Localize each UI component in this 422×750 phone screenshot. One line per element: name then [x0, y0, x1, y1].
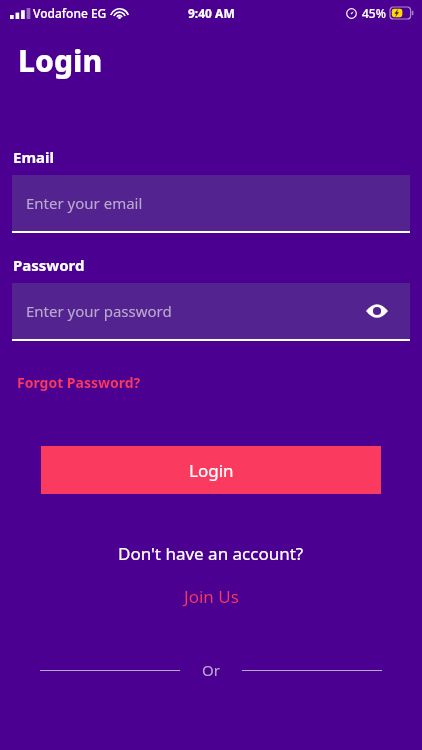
staticText: Or — [202, 660, 220, 680]
button[interactable]: Forgot Password? — [13, 369, 145, 396]
staticText: 9:40 AM — [188, 5, 235, 21]
staticText: Login — [189, 459, 234, 482]
staticText: Enter your password — [26, 301, 172, 321]
button[interactable]: Join Us — [174, 581, 249, 612]
staticText: Email — [13, 147, 54, 167]
staticText: 45% — [362, 5, 386, 21]
button[interactable]: Show password — [362, 296, 392, 326]
button[interactable]: Login — [41, 446, 381, 494]
staticText: Enter your email — [26, 193, 143, 213]
staticText: Vodafone EG — [33, 5, 107, 21]
staticText: Forgot Password? — [17, 373, 141, 392]
staticText: Login — [18, 40, 103, 81]
staticText: Don't have an account? — [118, 542, 304, 565]
button[interactable]: Enter your password — [12, 283, 410, 341]
button[interactable]: Enter your email — [12, 175, 410, 233]
staticText: Password — [13, 255, 85, 275]
staticText: Join Us — [184, 585, 239, 608]
